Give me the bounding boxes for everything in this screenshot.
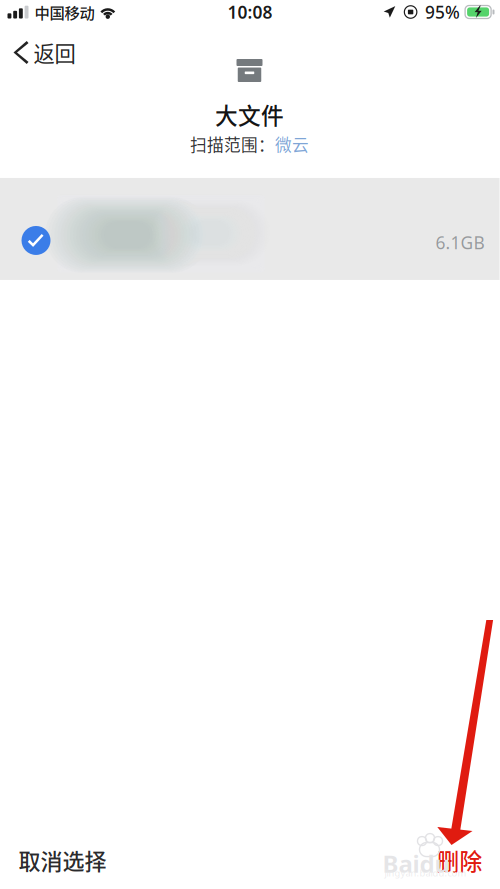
staticText: 删除 — [436, 844, 482, 876]
staticText: Baidu — [382, 848, 450, 879]
staticText: 95% — [425, 0, 460, 23]
staticText: 6.1GB — [435, 231, 484, 254]
staticText: 微云 — [275, 132, 309, 156]
staticText: 扫描范围： — [190, 132, 275, 156]
button[interactable]: 返回 — [0, 24, 87, 67]
staticText: 10:08 — [228, 0, 273, 23]
staticText: 返回 — [33, 37, 75, 68]
button[interactable]: 删除 — [436, 829, 499, 889]
staticText: 取消选择 — [18, 844, 106, 876]
staticText: jingyan.baidu.com — [384, 867, 466, 879]
staticText: 中国移动 — [34, 1, 94, 23]
button[interactable]: 取消选择 — [0, 829, 106, 889]
button[interactable]: 6.1GB — [0, 178, 499, 280]
staticText: 大文件 — [215, 98, 284, 131]
